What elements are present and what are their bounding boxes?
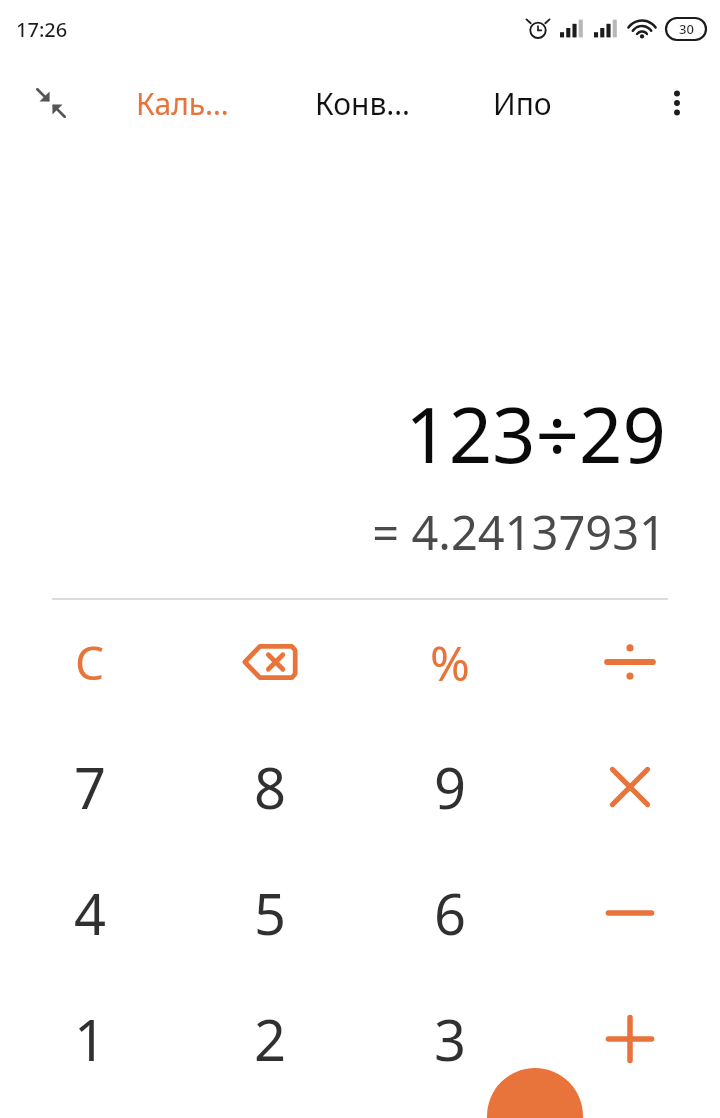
staticText: 17:26 [16, 16, 68, 43]
staticText: = 4.24137931 [372, 500, 666, 564]
staticText: Конв… [315, 83, 411, 124]
staticText: 5 [254, 875, 287, 951]
staticText: 123÷29 [405, 382, 666, 486]
button[interactable]: 1 [0, 976, 180, 1102]
staticText: Каль… [136, 83, 229, 124]
button[interactable]: C [0, 600, 180, 724]
button[interactable]: Divide [540, 600, 720, 724]
button[interactable]: Конв… [315, 77, 411, 130]
button[interactable]: Minus [540, 850, 720, 976]
button[interactable]: Backspace [180, 600, 360, 724]
button[interactable]: 8 [180, 724, 360, 850]
staticText: 30 [679, 20, 694, 38]
button[interactable]: 2 [180, 976, 360, 1102]
other: Multiply [597, 754, 663, 820]
staticText: 6 [434, 875, 467, 951]
other: Backspace [237, 629, 303, 695]
button[interactable]: Каль… [136, 77, 229, 130]
button[interactable]: Multiply [540, 724, 720, 850]
staticText: Ипо [493, 83, 552, 124]
staticText: 8 [254, 749, 287, 825]
other: Minus [597, 880, 663, 946]
button[interactable]: More options [650, 76, 704, 130]
staticText: 7 [74, 749, 107, 825]
other: Divide [597, 629, 663, 695]
staticText: 4 [74, 875, 107, 951]
button[interactable]: Plus [540, 976, 720, 1102]
button[interactable]: 4 [0, 850, 180, 976]
button[interactable]: 3 [360, 976, 540, 1102]
staticText: 1 [74, 1001, 107, 1077]
staticText: 9 [434, 749, 467, 825]
button[interactable]: % [360, 600, 540, 724]
button[interactable]: 5 [180, 850, 360, 976]
button[interactable]: 9 [360, 724, 540, 850]
button[interactable]: Collapse [24, 76, 78, 130]
button[interactable]: 7 [0, 724, 180, 850]
button[interactable]: Equals [487, 1068, 583, 1118]
other: Plus [597, 1006, 663, 1072]
button[interactable]: Ипо [493, 77, 552, 130]
staticText: % [430, 630, 470, 695]
button[interactable]: 6 [360, 850, 540, 976]
staticText: 3 [434, 1001, 467, 1077]
staticText: 2 [254, 1001, 287, 1077]
staticText: C [75, 631, 105, 694]
